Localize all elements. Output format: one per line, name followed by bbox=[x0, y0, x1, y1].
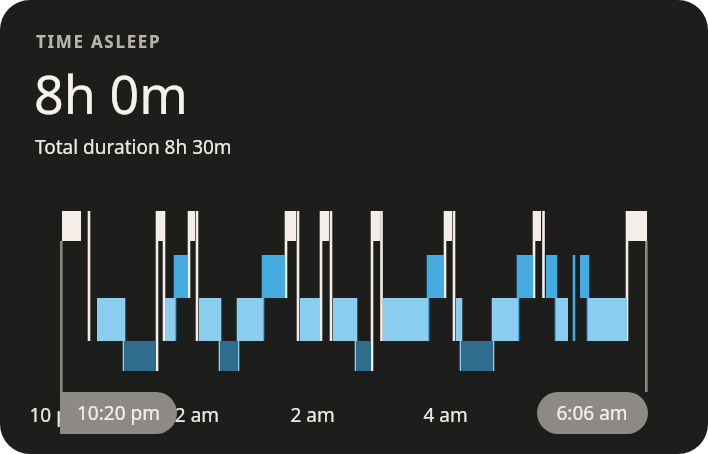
button[interactable]: Time asleep 8 hours 0 minutes bbox=[0, 0, 708, 454]
